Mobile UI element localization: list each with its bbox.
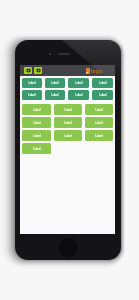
- staticText: logo: [91, 67, 103, 74]
- button[interactable]: Label: [54, 104, 82, 115]
- staticText: Label: [33, 147, 41, 151]
- button[interactable]: Label: [68, 78, 89, 88]
- staticText: Label: [33, 121, 41, 125]
- button[interactable]: Label: [22, 90, 42, 100]
- staticText: Label: [99, 93, 107, 97]
- button[interactable]: Label: [92, 78, 113, 88]
- button[interactable]: Label: [92, 90, 113, 100]
- button[interactable]: Label: [22, 117, 51, 128]
- staticText: Label: [64, 108, 72, 112]
- button[interactable]: Logo: [86, 67, 103, 74]
- button[interactable]: Photos: [34, 67, 42, 74]
- button[interactable]: Label: [68, 90, 89, 100]
- staticText: Label: [51, 81, 59, 85]
- staticText: Label: [95, 108, 103, 112]
- button[interactable]: Label: [85, 104, 113, 115]
- staticText: Label: [75, 93, 83, 97]
- button[interactable]: Label: [54, 130, 82, 141]
- staticText: Label: [28, 81, 36, 85]
- staticText: Label: [64, 134, 72, 138]
- staticText: Label: [33, 108, 41, 112]
- staticText: Label: [75, 81, 83, 85]
- staticText: Label: [51, 93, 59, 97]
- staticText: Label: [28, 93, 36, 97]
- button[interactable]: Label: [85, 117, 113, 128]
- staticText: Label: [33, 134, 41, 138]
- staticText: Label: [99, 81, 107, 85]
- button[interactable]: Label: [22, 130, 51, 141]
- button[interactable]: Menu: [24, 67, 32, 74]
- button[interactable]: Label: [22, 78, 42, 88]
- staticText: Label: [95, 121, 103, 125]
- button[interactable]: Label: [85, 130, 113, 141]
- staticText: Label: [64, 121, 72, 125]
- button[interactable]: Label: [22, 104, 51, 115]
- button[interactable]: Label: [45, 90, 65, 100]
- button[interactable]: Label: [22, 143, 51, 154]
- button[interactable]: Label: [45, 78, 65, 88]
- staticText: Label: [95, 134, 103, 138]
- button[interactable]: Label: [54, 117, 82, 128]
